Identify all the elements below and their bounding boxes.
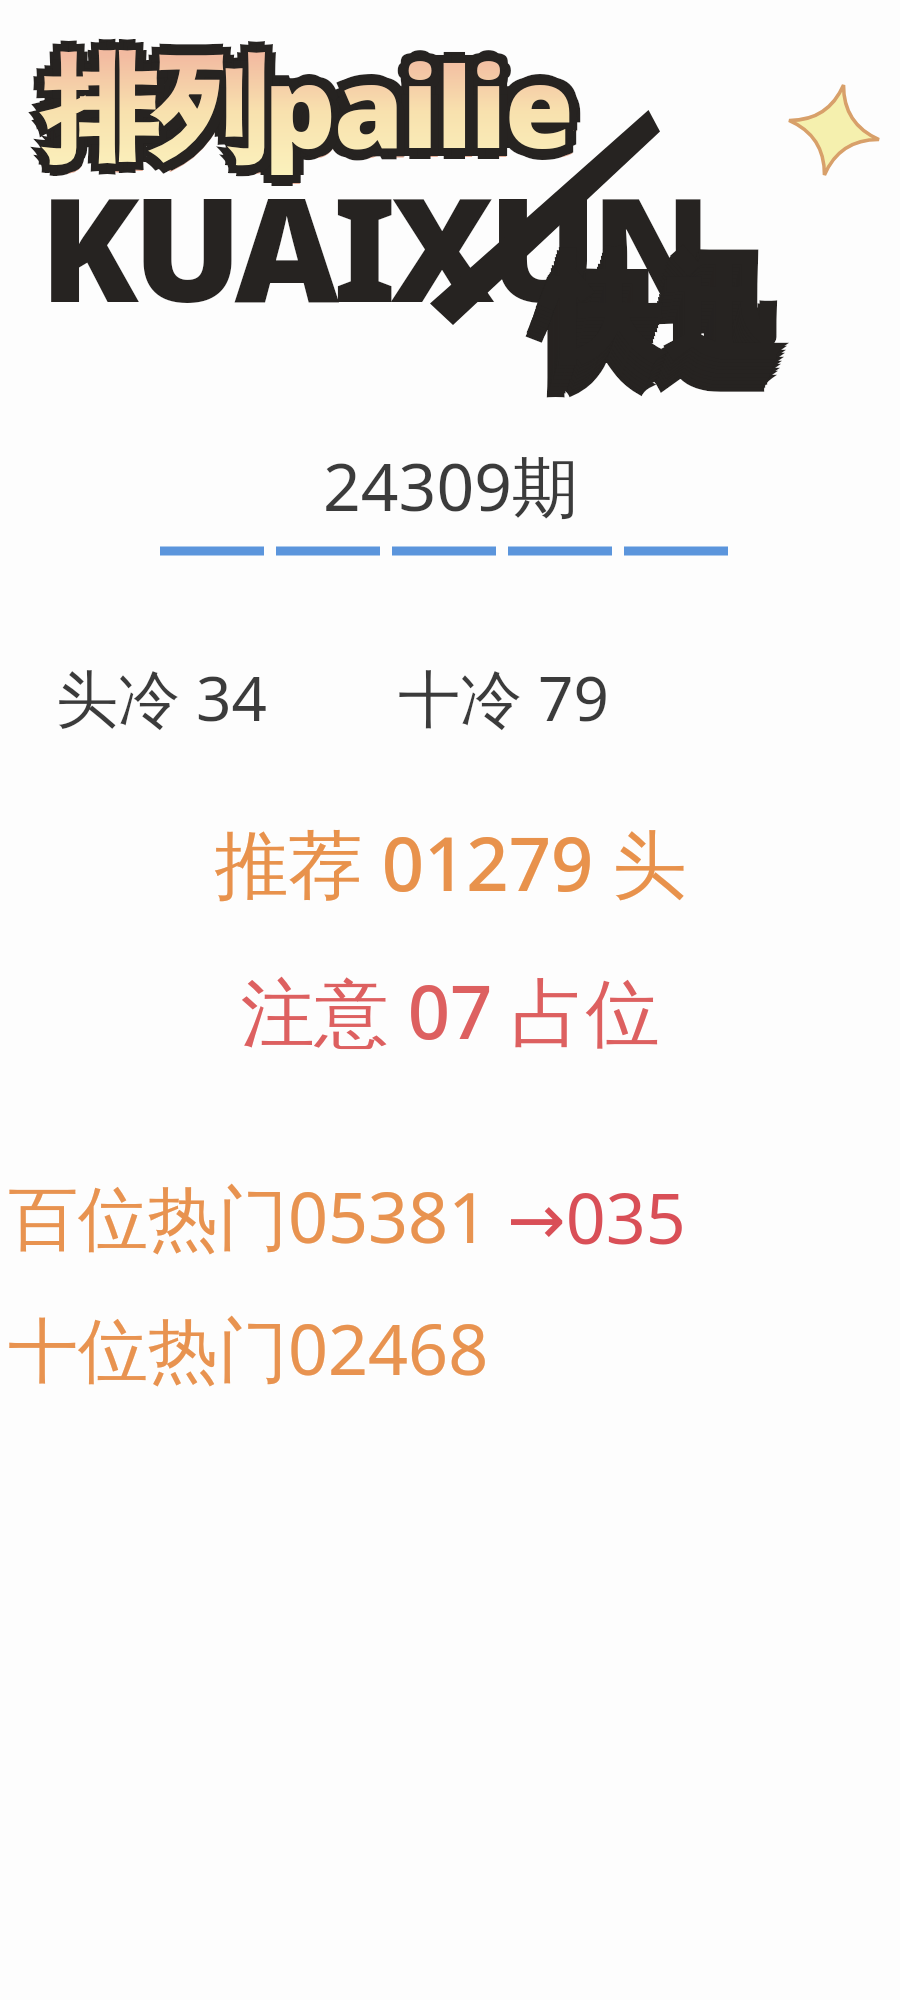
- button[interactable]: 十位热门02468: [8, 1300, 900, 1396]
- staticText: 注意 07 占位: [240, 960, 660, 1061]
- staticText: 排列pailie: [44, 17, 572, 170]
- staticText: →035: [507, 1169, 686, 1264]
- staticText: 排列pailie: [52, 36, 580, 189]
- staticText: 快迅: [535, 254, 775, 400]
- staticText: 推荐 01279 头: [214, 812, 687, 913]
- staticText: 排列pailie: [33, 28, 561, 181]
- staticText: 快迅: [538, 246, 778, 392]
- staticText: 快迅: [540, 239, 780, 385]
- button[interactable]: 十冷 79: [398, 655, 610, 740]
- staticText: 快迅: [531, 264, 771, 410]
- button[interactable]: 注意 07 占位: [0, 960, 900, 1061]
- staticText: 排列pailie: [36, 20, 564, 173]
- button[interactable]: 24309期: [0, 440, 900, 558]
- staticText: 排列pailie: [36, 36, 564, 189]
- button[interactable]: 头冷 34: [56, 655, 268, 740]
- staticText: 十位热门02468: [8, 1300, 489, 1396]
- staticText: 快迅: [534, 257, 774, 403]
- button[interactable]: 百位热门05381: [8, 1168, 900, 1264]
- button[interactable]: 推荐 01279 头: [0, 812, 900, 913]
- staticText: 快迅: [542, 236, 782, 382]
- staticText: 24309期: [323, 440, 578, 530]
- staticText: 排列pailie: [52, 20, 580, 173]
- staticText: 快迅: [530, 268, 770, 414]
- staticText: 排列pailie: [44, 28, 572, 181]
- staticText: 排列pailie: [51, 37, 579, 190]
- staticText: 快迅: [539, 243, 779, 389]
- staticText: 快迅: [533, 261, 773, 407]
- staticText: 排列pailie: [44, 39, 572, 192]
- staticText: KUAIXUN: [40, 148, 706, 344]
- staticText: 百位热门05381: [8, 1168, 507, 1264]
- button[interactable]: 排列pailie KUAIXUN 快迅 logo: [0, 0, 900, 440]
- staticText: 快迅: [537, 250, 777, 396]
- staticText: 排列pailie: [55, 28, 583, 181]
